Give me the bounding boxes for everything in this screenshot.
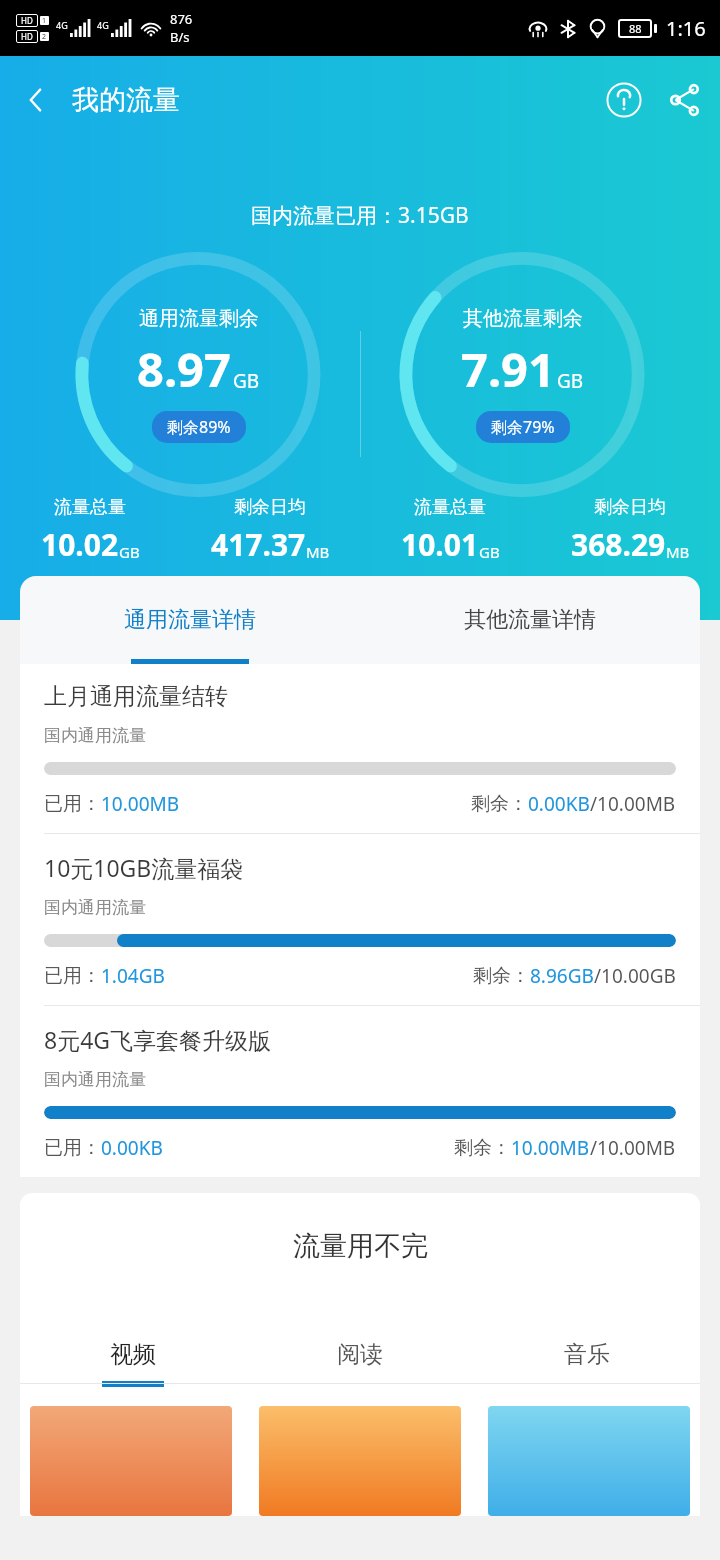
button[interactable]: 其他流量详情 — [360, 576, 700, 664]
staticText: 1.04GB — [101, 963, 165, 989]
staticText: 剩余日均 — [234, 496, 306, 519]
staticText: 876 — [170, 10, 193, 28]
staticText: MB — [306, 542, 330, 562]
button[interactable]: Share — [656, 68, 714, 132]
staticText: 国内流量已用：3.15GB — [251, 201, 469, 230]
staticText: 0.00KB — [101, 1135, 163, 1161]
button[interactable]: 视频 — [20, 1325, 246, 1383]
staticText: 国内通用流量 — [44, 725, 146, 746]
button[interactable]: 音乐 — [473, 1325, 700, 1383]
staticText: GB — [557, 368, 584, 394]
staticText: /10.00MB — [590, 1135, 676, 1161]
staticText: 其他流量详情 — [464, 606, 596, 634]
staticText: 剩余日均 — [594, 496, 666, 519]
staticText: 4G — [97, 19, 109, 31]
staticText: 0.00KB — [528, 791, 590, 817]
staticText: /10.00GB — [594, 963, 676, 989]
staticText: 音乐 — [564, 1340, 610, 1369]
button[interactable]: Help — [592, 68, 656, 132]
staticText: 7.91 — [461, 337, 555, 401]
button[interactable]: 剩余79% — [491, 416, 555, 438]
staticText: 8元4G飞享套餐升级版 — [44, 1024, 272, 1055]
staticText: 剩余： — [454, 1136, 511, 1160]
staticText: HD — [21, 31, 33, 42]
staticText: 已用： — [44, 1136, 101, 1160]
staticText: GB — [479, 542, 500, 562]
staticText: 4G — [56, 19, 68, 31]
button[interactable]: Back — [0, 56, 72, 144]
staticText: 1:16 — [666, 15, 706, 42]
staticText: B/s — [170, 28, 190, 46]
staticText: 上月通用流量结转 — [44, 682, 228, 711]
button[interactable] — [488, 1406, 690, 1516]
staticText: 10.00MB — [511, 1135, 590, 1161]
staticText: 已用： — [44, 792, 101, 816]
staticText: 流量不够用？点我月月领 — [250, 612, 470, 637]
button[interactable]: 阅读 — [246, 1325, 473, 1383]
button[interactable]: 10元10GB流量福袋 — [20, 834, 700, 1005]
staticText: 我的流量 — [72, 83, 180, 117]
staticText: 阅读 — [337, 1340, 383, 1369]
staticText: 1 — [42, 16, 47, 25]
staticText: HD — [21, 15, 33, 26]
staticText: 8.96GB — [530, 963, 594, 989]
button[interactable]: 上月通用流量结转 — [20, 664, 700, 833]
staticText: 10.01 — [401, 524, 479, 565]
staticText: GB — [233, 368, 260, 394]
staticText: 通用流量剩余 — [139, 306, 259, 331]
staticText: 88 — [629, 21, 642, 36]
staticText: 2 — [42, 32, 47, 41]
staticText: 剩余： — [473, 964, 530, 988]
button[interactable] — [259, 1406, 461, 1516]
staticText: 剩余： — [471, 792, 528, 816]
staticText: 368.29 — [571, 524, 666, 565]
button[interactable]: 8元4G飞享套餐升级版 — [20, 1006, 700, 1177]
staticText: 10元10GB流量福袋 — [44, 852, 244, 883]
staticText: MB — [666, 542, 690, 562]
staticText: 剩余79% — [491, 416, 555, 438]
staticText: 已用： — [44, 964, 101, 988]
staticText: 国内通用流量 — [44, 1069, 146, 1090]
staticText: 流量总量 — [54, 496, 126, 519]
button[interactable]: 流量不够用？点我月月领 — [200, 598, 520, 650]
staticText: 417.37 — [211, 524, 306, 565]
staticText: 国内通用流量 — [44, 897, 146, 918]
staticText: 其他流量剩余 — [463, 306, 583, 331]
staticText: GB — [119, 542, 140, 562]
staticText: 流量总量 — [414, 496, 486, 519]
staticText: 10.00MB — [101, 791, 180, 817]
button[interactable]: 剩余89% — [167, 416, 231, 438]
button[interactable]: 通用流量详情 — [20, 576, 360, 664]
staticText: 通用流量详情 — [124, 606, 256, 634]
staticText: 剩余89% — [167, 416, 231, 438]
staticText: 10.02 — [41, 524, 119, 565]
button[interactable] — [30, 1406, 232, 1516]
staticText: 8.97 — [137, 337, 231, 401]
staticText: 流量用不完 — [293, 1229, 428, 1263]
staticText: 视频 — [110, 1340, 156, 1369]
staticText: /10.00MB — [590, 791, 676, 817]
